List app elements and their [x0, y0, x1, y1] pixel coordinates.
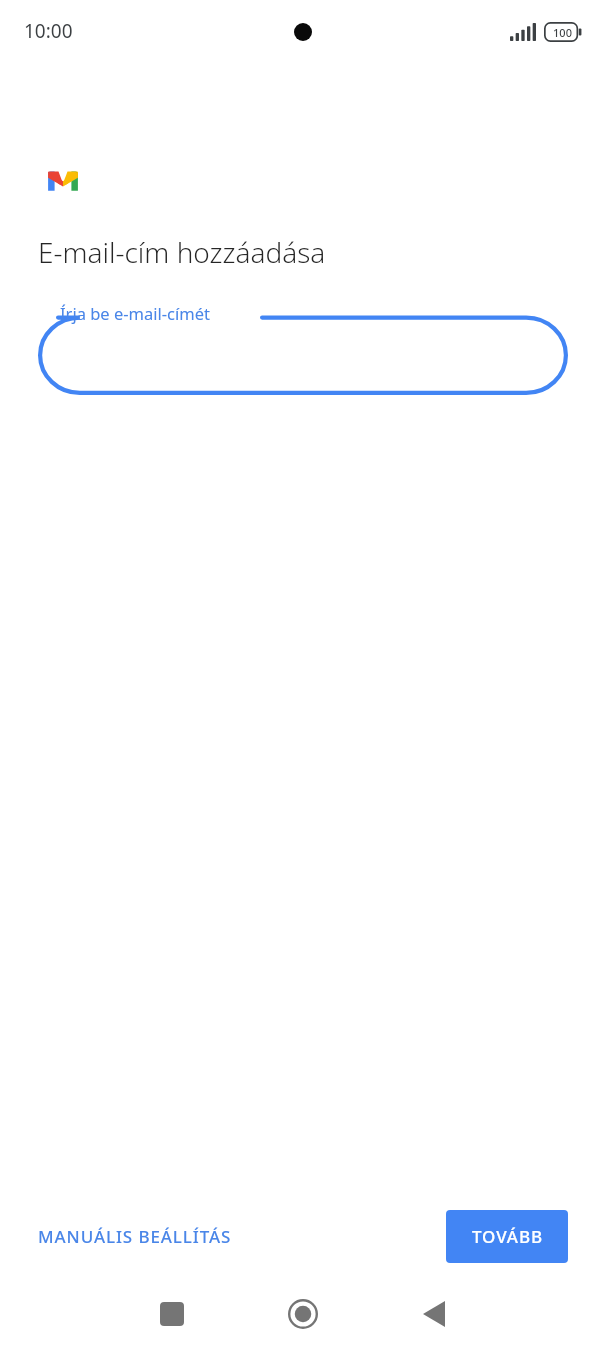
- staticText: 10:00: [24, 18, 73, 44]
- staticText: 100: [553, 25, 572, 40]
- staticText: Írja be e-mail-címét: [60, 302, 210, 324]
- button[interactable]: Back: [404, 1284, 464, 1344]
- staticText: E-mail-cím hozzáadása: [38, 233, 326, 271]
- staticText: TOVÁBB: [472, 1225, 543, 1248]
- button[interactable]: MANUÁLIS BEÁLLÍTÁS: [24, 1213, 246, 1260]
- button[interactable]: Írja be e-mail-címét: [38, 299, 568, 395]
- staticText: MANUÁLIS BEÁLLÍTÁS: [38, 1225, 232, 1248]
- button[interactable]: TOVÁBB: [446, 1210, 568, 1263]
- button[interactable]: Recent apps: [142, 1284, 202, 1344]
- button[interactable]: Home: [273, 1284, 333, 1344]
